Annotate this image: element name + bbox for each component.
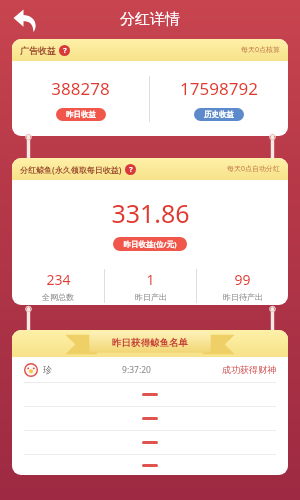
staticText: 历史收益 (204, 110, 234, 119)
staticText: 9:37:20 (122, 364, 151, 376)
staticText: 分红详情 (120, 10, 180, 29)
staticText: 成功获得财神 (222, 364, 276, 375)
staticText: 昨日收益(位/元) (123, 239, 177, 249)
staticText: ? (129, 165, 133, 175)
button[interactable]: 历史收益 (194, 108, 244, 121)
staticText: 388278 (51, 77, 110, 100)
staticText: ? (63, 46, 67, 56)
button[interactable]: 珍 (12, 357, 288, 382)
staticText: 昨日获得鲸鱼名单 (112, 337, 188, 349)
staticText: 331.86 (111, 196, 190, 230)
button[interactable]: Back (8, 3, 42, 37)
staticText: 每天0点自动分红 (226, 164, 280, 174)
staticText: 广告收益 (20, 45, 56, 56)
button[interactable]: Help (125, 164, 136, 175)
staticText: 昨日待产出 (223, 292, 263, 302)
staticText: 昨日收益 (66, 110, 96, 119)
button[interactable]: 昨日收益(位/元) (113, 237, 187, 251)
staticText: 分红鲸鱼(永久领取每日收益) (20, 164, 122, 175)
staticText: 珍 (43, 364, 52, 375)
staticText: 昨日产出 (135, 292, 167, 302)
staticText: 全网总数 (42, 292, 74, 302)
button[interactable]: Help (59, 45, 70, 56)
staticText: 234 (46, 270, 71, 289)
staticText: 每天0点核算 (240, 45, 280, 55)
staticText: 99 (234, 270, 251, 289)
staticText: 17598792 (180, 77, 258, 100)
button[interactable]: 昨日收益 (56, 108, 106, 121)
staticText: 1 (146, 270, 155, 289)
